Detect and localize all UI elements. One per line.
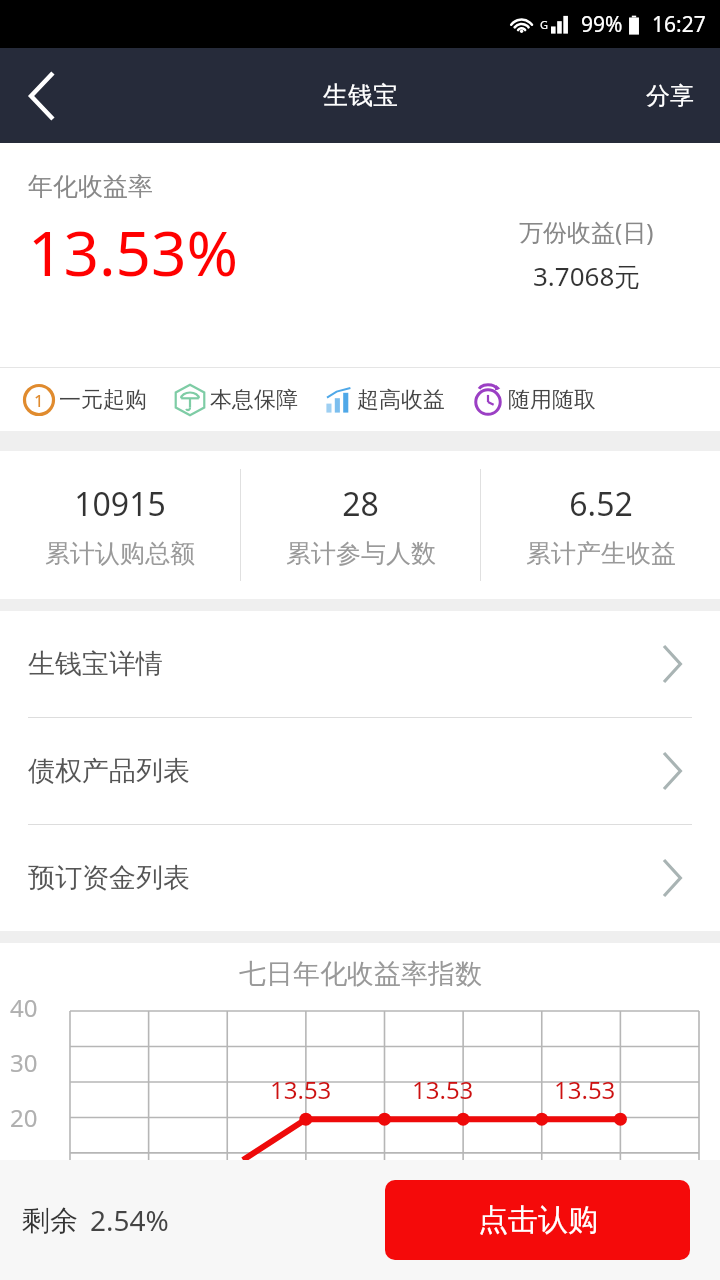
staticText: 随用随取 — [508, 386, 596, 414]
button[interactable]: 10915 — [0, 482, 240, 569]
staticText: 6.52 — [569, 482, 633, 526]
staticText: 债权产品列表 — [28, 754, 190, 788]
staticText: 一元起购 — [59, 386, 147, 414]
staticText: 30 — [10, 1046, 38, 1079]
staticText: 28 — [342, 482, 379, 526]
staticText: 万份收益(日) — [519, 215, 654, 248]
staticText: 年化收益率 — [28, 171, 153, 202]
staticText: 本息保障 — [210, 386, 298, 414]
staticText: 剩余 — [22, 1203, 78, 1238]
staticText: 20 — [10, 1101, 38, 1134]
staticText: 3.7068元 — [533, 258, 641, 294]
staticText: G — [540, 17, 549, 32]
staticText: 分享 — [646, 81, 694, 111]
staticText: 10915 — [74, 482, 166, 526]
staticText: 预订资金列表 — [28, 861, 190, 895]
staticText: 累计产生收益 — [526, 538, 676, 569]
button[interactable]: 债权产品列表 — [0, 718, 720, 824]
staticText: 七日年化收益率指数 — [239, 957, 482, 991]
staticText: 点击认购 — [478, 1201, 598, 1239]
staticText: 13.53 — [270, 1073, 332, 1106]
staticText: 超高收益 — [357, 386, 445, 414]
staticText: 13.53 — [412, 1073, 474, 1106]
staticText: 13.53 — [554, 1073, 616, 1106]
staticText: 40 — [10, 991, 38, 1024]
button[interactable]: Back — [0, 48, 84, 143]
staticText: 2.54% — [90, 1201, 169, 1239]
staticText: 累计参与人数 — [286, 538, 436, 569]
staticText: 1 — [34, 389, 44, 412]
staticText: 生钱宝详情 — [28, 647, 163, 681]
staticText: 13.53% — [28, 210, 238, 294]
button[interactable]: 28 — [241, 482, 480, 569]
button[interactable]: 点击认购 — [385, 1180, 690, 1260]
staticText: 生钱宝 — [323, 80, 398, 111]
staticText: 16:27 — [652, 10, 706, 39]
button[interactable]: 生钱宝详情 — [0, 611, 720, 717]
button[interactable]: 6.52 — [481, 482, 720, 569]
staticText: 99% — [581, 10, 623, 39]
button[interactable]: 分享 — [620, 48, 720, 143]
button[interactable]: 预订资金列表 — [0, 825, 720, 931]
staticText: 累计认购总额 — [45, 538, 195, 569]
